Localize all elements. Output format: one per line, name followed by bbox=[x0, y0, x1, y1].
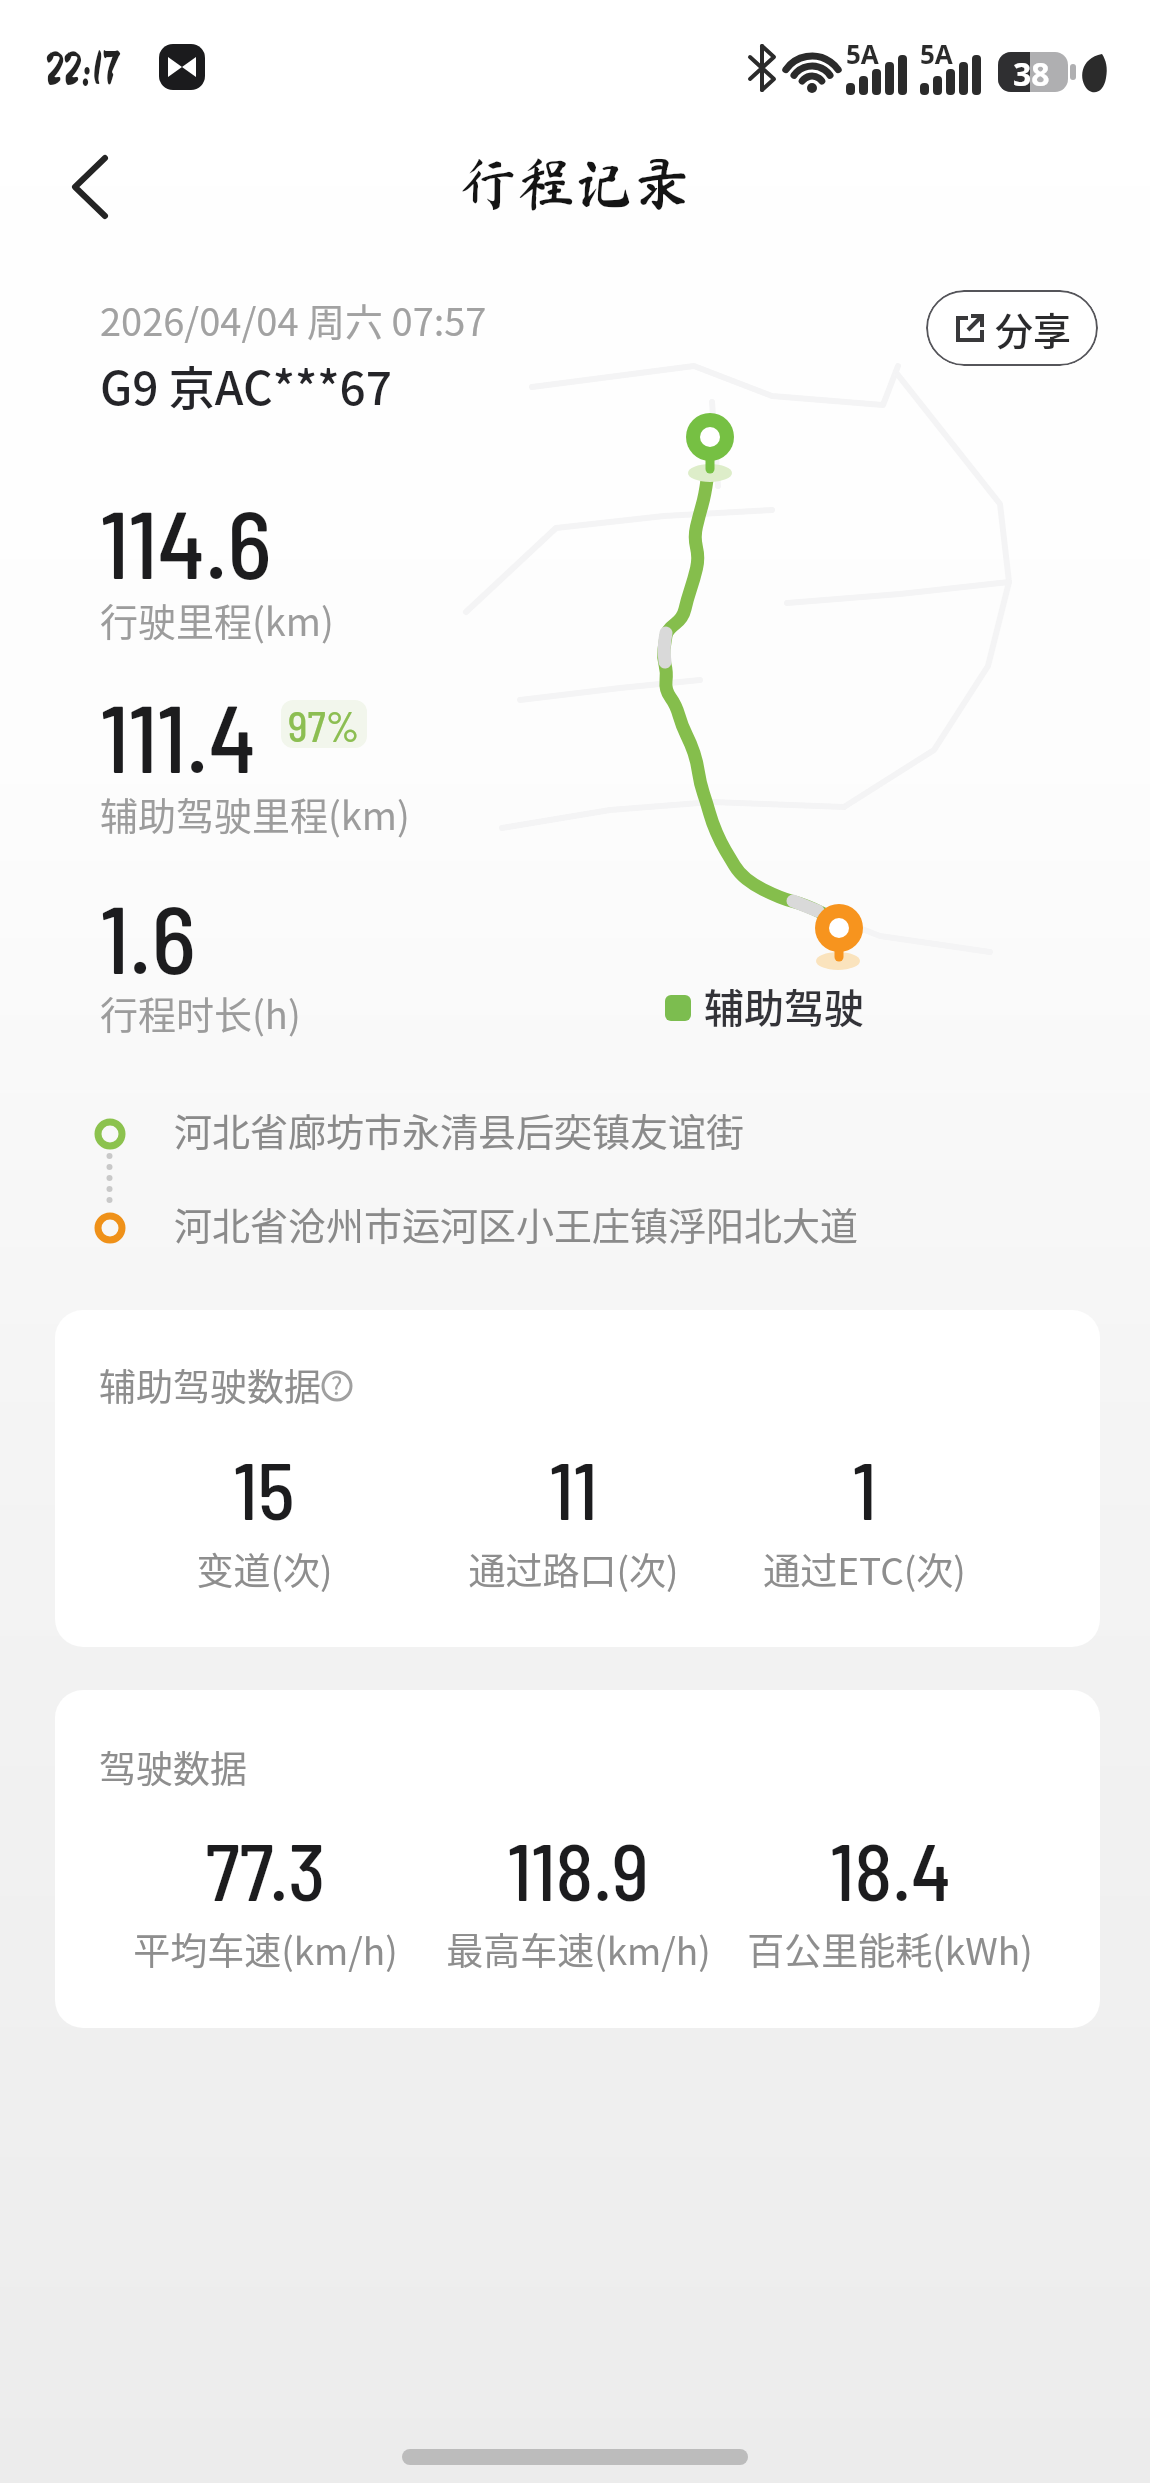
staticText: 18.4 bbox=[830, 1822, 951, 1917]
staticText: 111.4 bbox=[100, 679, 256, 792]
staticText: 1.6 bbox=[100, 880, 196, 993]
button[interactable]: 分享 bbox=[926, 290, 1098, 366]
staticText: 5A bbox=[846, 36, 879, 71]
staticText: 97% bbox=[288, 700, 360, 748]
staticText: 河北省廊坊市永清县后奕镇友谊街 bbox=[174, 1102, 745, 1157]
staticText: 辅助驾驶里程(km) bbox=[100, 786, 410, 841]
staticText: 最高车速(km/h) bbox=[446, 1922, 711, 1976]
staticText: 分享 bbox=[995, 301, 1072, 356]
staticText: 118.9 bbox=[507, 1822, 649, 1917]
button[interactable] bbox=[40, 130, 140, 235]
staticText: 38 bbox=[1013, 52, 1050, 96]
staticText: 77.3 bbox=[205, 1822, 326, 1917]
staticText: 通过路口(次) bbox=[468, 1542, 679, 1596]
staticText: ? bbox=[331, 1367, 343, 1402]
staticText: 5A bbox=[920, 36, 953, 71]
staticText: 15 bbox=[233, 1441, 295, 1536]
staticText: 2026/04/04 周六 07:57 bbox=[100, 292, 487, 347]
staticText: 11 bbox=[549, 1441, 598, 1536]
staticText: 行程时长(h) bbox=[100, 985, 301, 1040]
button[interactable] bbox=[320, 1369, 354, 1403]
staticText: 辅助驾驶 bbox=[704, 977, 864, 1035]
staticText: 辅助驾驶数据 bbox=[99, 1358, 321, 1412]
staticText: 驾驶数据 bbox=[99, 1740, 247, 1794]
staticText: G9 京AC***67 bbox=[100, 352, 392, 419]
staticText: 通过ETC(次) bbox=[763, 1542, 966, 1596]
staticText: 河北省沧州市运河区小王庄镇浮阳北大道 bbox=[174, 1196, 859, 1251]
staticText: 变道(次) bbox=[196, 1542, 333, 1596]
staticText: 行驶里程(km) bbox=[100, 592, 334, 647]
staticText: 行程记录 bbox=[459, 154, 692, 212]
staticText: 114.6 bbox=[100, 485, 272, 598]
staticText: 1 bbox=[852, 1441, 877, 1536]
staticText: 平均车速(km/h) bbox=[133, 1922, 398, 1976]
staticText: 百公里能耗(kWh) bbox=[747, 1922, 1033, 1976]
staticText: 22:17 bbox=[45, 46, 119, 94]
